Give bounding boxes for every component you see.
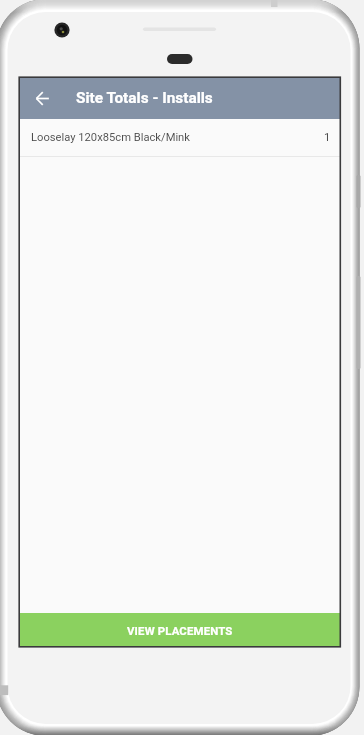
staticText: Looselay 120x85cm Black/Mink [31,131,190,144]
button[interactable]: Looselay 120x85cm Black/Mink [20,119,340,157]
staticText: VIEW PLACEMENTS [127,624,233,637]
staticText: 1 [324,131,331,144]
staticText: Site Totals - Installs [76,89,213,107]
button[interactable]: Back [26,82,58,114]
button[interactable]: VIEW PLACEMENTS [20,613,340,646]
